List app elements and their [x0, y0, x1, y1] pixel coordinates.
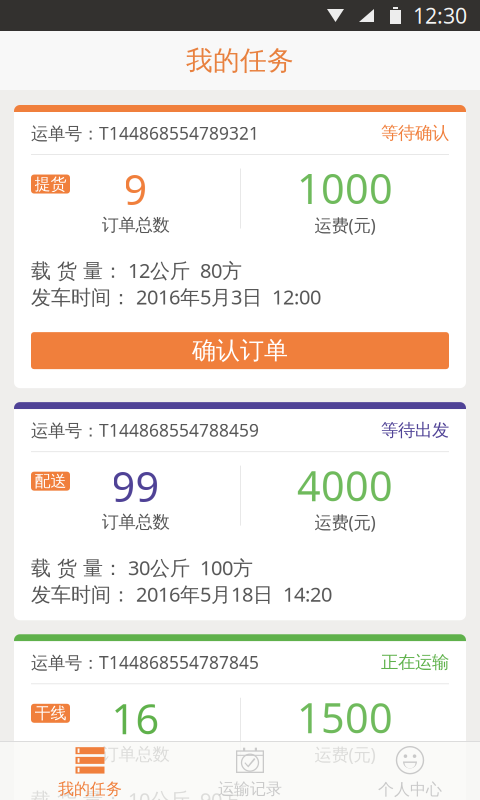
staticText: 运费(元) — [314, 511, 375, 534]
staticText: 载 货 量： 30公斤 100方 — [31, 554, 253, 581]
button[interactable]: 确认订单 — [31, 332, 449, 369]
staticText: 订单总数 — [101, 743, 169, 765]
staticText: 我的任务 — [58, 779, 122, 799]
staticText: 载 货 量： 12公斤 80方 — [31, 257, 242, 284]
staticText: 提货 — [34, 174, 66, 194]
staticText: 运单号：T144868554788459 — [31, 419, 259, 442]
staticText: 运费(元) — [314, 743, 375, 766]
staticText: 我的任务 — [186, 44, 294, 77]
staticText: 4000 — [297, 458, 393, 513]
staticText: 运费(元) — [314, 213, 375, 236]
staticText: 运输记录 — [218, 779, 282, 799]
button[interactable]: 我的任务 — [10, 744, 170, 800]
staticText: 等待确认 — [381, 122, 449, 144]
staticText: 99 — [111, 458, 159, 513]
staticText: 干线 — [34, 703, 66, 723]
staticText: 12:30 — [413, 1, 467, 30]
button[interactable]: 运输记录 — [170, 744, 330, 800]
staticText: 载 货 量： 10公斤 90方 — [31, 786, 242, 800]
staticText: 9 — [123, 161, 147, 216]
staticText: 运单号：T144868554789321 — [31, 121, 259, 144]
staticText: 发车时间： 2016年5月3日 12:00 — [31, 284, 321, 310]
staticText: 配送 — [34, 471, 66, 491]
staticText: 正在运输 — [381, 652, 449, 673]
staticText: 订单总数 — [101, 214, 169, 236]
staticText: 个人中心 — [378, 780, 442, 799]
staticText: 1000 — [297, 160, 393, 215]
button[interactable]: 个人中心 — [330, 744, 480, 800]
staticText: 1500 — [297, 690, 393, 745]
staticText: 运单号：T144868554787845 — [31, 651, 259, 674]
staticText: 订单总数 — [101, 511, 169, 533]
staticText: 发车时间： 2016年5月18日 14:20 — [31, 581, 332, 607]
staticText: 16 — [111, 691, 159, 745]
staticText: 等待出发 — [381, 419, 449, 441]
staticText: 确认订单 — [192, 336, 288, 365]
